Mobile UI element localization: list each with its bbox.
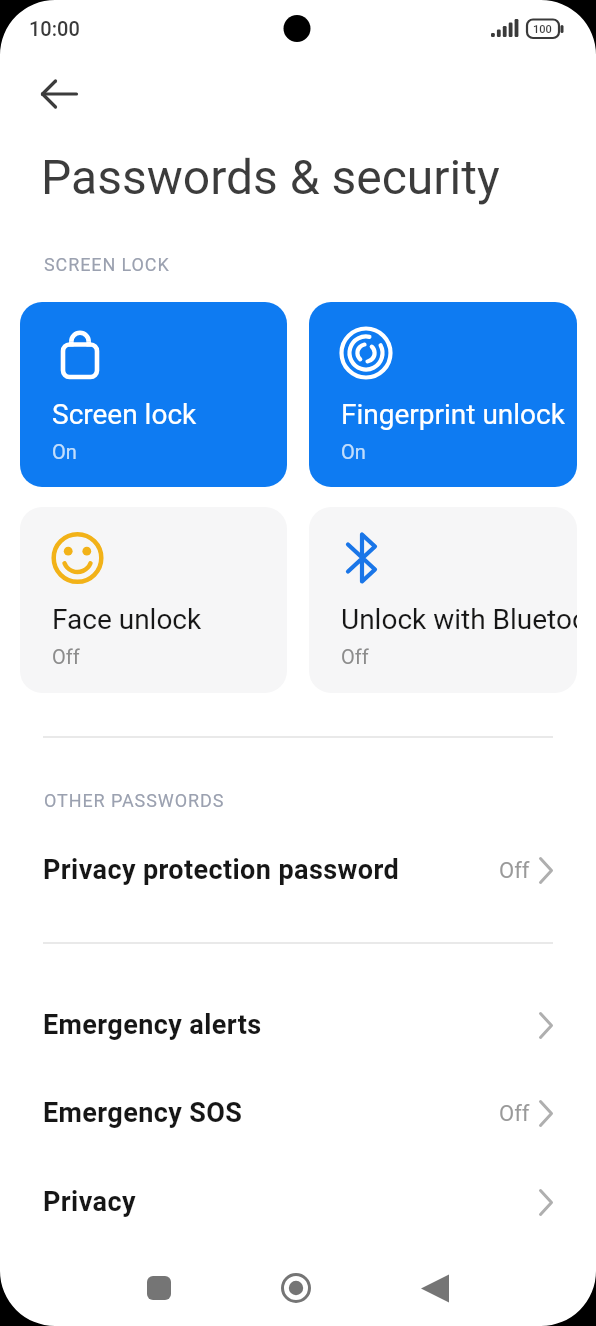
- button[interactable]: Privacy: [0, 1158, 596, 1246]
- button[interactable]: Emergency SOS: [0, 1069, 596, 1157]
- staticText: Unlock with Bluetooth device: [341, 603, 577, 636]
- button[interactable]: Fingerprint unlock: [309, 302, 577, 487]
- button[interactable]: [254, 1258, 338, 1318]
- staticText: Privacy: [43, 1186, 136, 1218]
- staticText: Emergency alerts: [43, 1009, 262, 1041]
- staticText: Off: [499, 858, 530, 884]
- button[interactable]: [30, 70, 86, 116]
- staticText: On: [341, 440, 366, 463]
- staticText: Emergency SOS: [43, 1097, 243, 1129]
- button[interactable]: Face unlock: [20, 507, 287, 693]
- staticText: 100: [533, 23, 552, 36]
- button[interactable]: [390, 1258, 474, 1318]
- button[interactable]: [118, 1258, 202, 1318]
- staticText: OTHER PASSWORDS: [44, 790, 225, 811]
- button[interactable]: Privacy protection password: [0, 826, 596, 914]
- staticText: SCREEN LOCK: [44, 254, 170, 275]
- button[interactable]: Unlock with Bluetooth device: [309, 507, 577, 693]
- staticText: 10:00: [29, 17, 80, 40]
- staticText: Screen lock: [52, 398, 197, 431]
- staticText: On: [52, 440, 77, 463]
- staticText: Passwords & security: [41, 149, 500, 205]
- button[interactable]: Screen lock: [20, 302, 287, 487]
- staticText: Off: [341, 645, 369, 668]
- button[interactable]: Emergency alerts: [0, 981, 596, 1069]
- staticText: Off: [52, 645, 80, 668]
- staticText: Privacy protection password: [43, 854, 400, 886]
- staticText: Off: [499, 1101, 530, 1127]
- staticText: Face unlock: [52, 603, 202, 636]
- staticText: Fingerprint unlock: [341, 398, 565, 431]
